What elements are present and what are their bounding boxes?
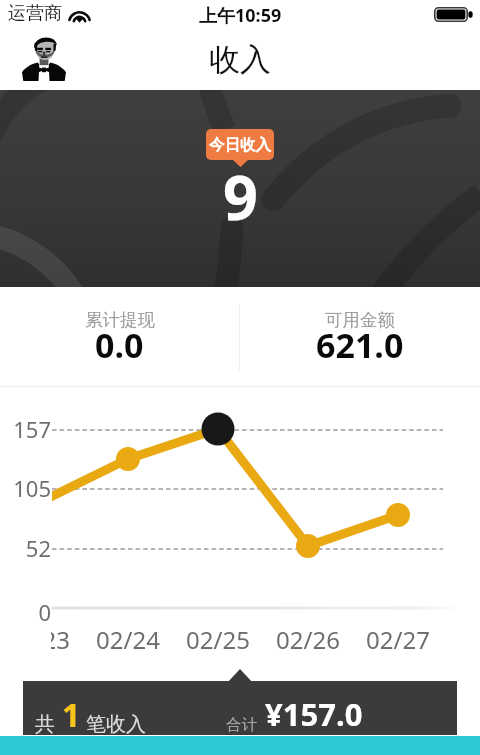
staticText: 02/24 xyxy=(83,623,173,656)
staticText: 02/27 xyxy=(353,623,443,656)
staticText: 02/26 xyxy=(263,623,353,656)
button[interactable]: 共 xyxy=(23,681,457,735)
staticText: 02/25 xyxy=(173,623,263,656)
staticText: 105 xyxy=(0,473,51,503)
staticText: 1 xyxy=(62,693,81,737)
staticText: 共 xyxy=(35,712,55,737)
staticText: 笔收入 xyxy=(86,712,146,737)
staticText: 9 xyxy=(223,155,258,238)
staticText: 累计提现 xyxy=(85,309,155,331)
staticText: 运营商 xyxy=(8,2,62,25)
staticText: 合计 xyxy=(226,715,257,735)
button[interactable]: 累计提现 xyxy=(0,287,239,386)
button[interactable]: 可用金额 xyxy=(240,287,480,386)
button[interactable]: 今日收入 xyxy=(206,129,274,160)
staticText: 52 xyxy=(0,533,51,563)
staticText: 0 xyxy=(0,597,51,627)
staticText: 621.0 xyxy=(316,322,404,368)
staticText: ¥157.0 xyxy=(265,693,363,735)
staticText: 157 xyxy=(0,414,51,444)
staticText: 可用金额 xyxy=(325,309,395,331)
staticText: 0.0 xyxy=(95,322,144,368)
staticText: 今日收入 xyxy=(209,135,271,155)
staticText: 上午10:59 xyxy=(199,3,282,28)
button[interactable]: Profile xyxy=(22,37,66,81)
staticText: 收入 xyxy=(209,40,271,79)
staticText: 02/23 xyxy=(51,623,83,656)
